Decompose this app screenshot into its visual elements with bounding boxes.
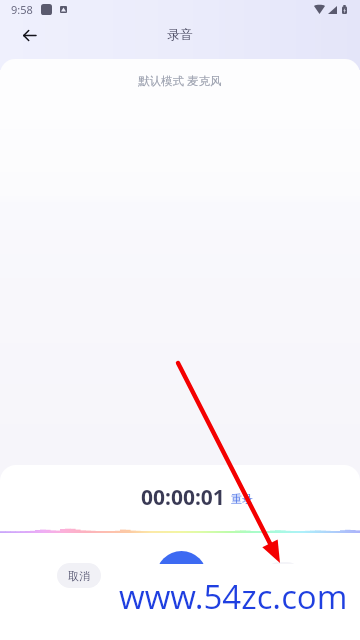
staticText: 00:00:01	[141, 483, 225, 512]
staticText: www.54zc.com	[119, 574, 348, 619]
staticText: 取消	[68, 569, 90, 583]
button[interactable]: 重录	[229, 490, 255, 508]
staticText: 9:58	[11, 2, 33, 17]
button[interactable]: Done	[266, 562, 300, 587]
staticText: 重录	[231, 492, 253, 506]
staticText: 录音	[167, 27, 193, 43]
button[interactable]: 取消	[57, 563, 101, 588]
button[interactable]: Back	[11, 17, 47, 53]
staticText: 默认模式 麦克风	[138, 73, 222, 89]
button[interactable]: Record	[156, 551, 207, 602]
